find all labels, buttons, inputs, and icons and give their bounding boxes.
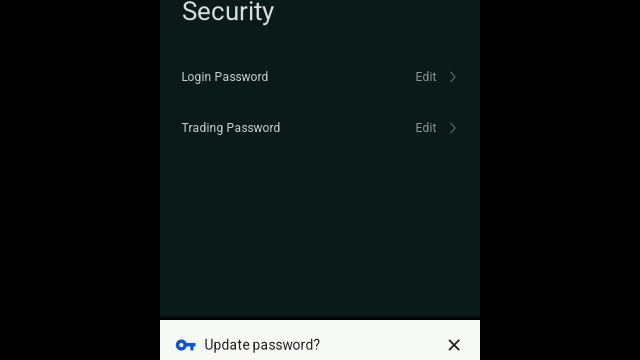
button[interactable]: Login Password: [160, 63, 480, 91]
button[interactable]: Close: [436, 320, 480, 360]
staticText: Edit: [415, 121, 436, 135]
staticText: Trading Password: [182, 121, 281, 135]
staticText: Edit: [415, 70, 436, 84]
staticText: Security: [182, 0, 274, 27]
staticText: Login Password: [182, 70, 269, 84]
staticText: Update password?: [204, 337, 320, 353]
button[interactable]: Update password?: [160, 320, 436, 360]
button[interactable]: Trading Password: [160, 114, 480, 142]
